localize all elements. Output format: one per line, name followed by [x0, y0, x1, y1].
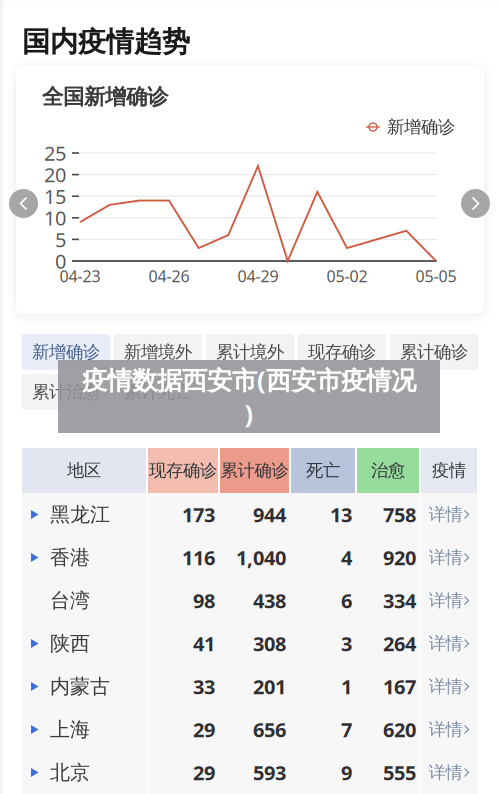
staticText: 1,040: [236, 544, 286, 571]
staticText: 15: [44, 183, 66, 209]
button[interactable]: 详情: [421, 579, 477, 622]
staticText: 香港: [50, 545, 90, 570]
staticText: 黑龙江: [50, 502, 110, 527]
staticText: 累计确诊: [400, 341, 468, 363]
button[interactable]: 详情: [421, 493, 477, 536]
staticText: 20: [44, 161, 66, 188]
staticText: 台湾: [50, 588, 90, 613]
staticText: 疫情数据西安市(西安市疫情况: [82, 363, 416, 396]
staticText: 555: [383, 759, 416, 786]
button[interactable]: 累计境外: [205, 334, 294, 370]
staticText: 新增确诊: [387, 116, 455, 138]
staticText: 167: [383, 673, 416, 700]
staticText: 920: [383, 544, 416, 571]
button[interactable]: 新增确诊: [21, 334, 110, 370]
staticText: 116: [182, 544, 215, 571]
staticText: 详情: [428, 762, 462, 783]
staticText: 33: [193, 673, 215, 700]
staticText: 13: [330, 501, 352, 528]
staticText: 758: [383, 501, 416, 528]
staticText: 04-23: [59, 265, 100, 287]
staticText: 1: [341, 673, 352, 700]
button[interactable]: 累计死亡: [113, 374, 202, 410]
staticText: 9: [341, 759, 352, 786]
staticText: 详情: [428, 633, 462, 654]
button[interactable]: 详情: [421, 665, 477, 708]
staticText: 438: [253, 587, 286, 614]
staticText: 5: [55, 226, 66, 253]
staticText: 656: [253, 716, 286, 743]
staticText: 98: [193, 587, 215, 614]
staticText: 上海: [50, 717, 90, 742]
staticText: 内蒙古: [50, 674, 110, 699]
staticText: 治愈: [371, 460, 405, 481]
button[interactable]: 详情: [421, 536, 477, 579]
staticText: ): [244, 396, 253, 430]
staticText: 地区: [67, 460, 101, 481]
button[interactable]: Next: [461, 189, 490, 218]
staticText: 陕西: [50, 631, 90, 656]
staticText: 详情: [428, 504, 462, 525]
button[interactable]: 累计治愈: [21, 374, 110, 410]
staticText: 累计确诊: [220, 460, 288, 481]
staticText: 死亡: [306, 460, 340, 481]
staticText: 现存确诊: [149, 460, 217, 481]
staticText: 3: [341, 630, 352, 657]
button[interactable]: 详情: [421, 751, 477, 794]
staticText: 北京: [50, 760, 90, 785]
staticText: 29: [193, 759, 215, 786]
staticText: 593: [253, 759, 286, 786]
staticText: 详情: [428, 719, 462, 740]
staticText: 25: [44, 140, 66, 166]
staticText: 详情: [428, 547, 462, 568]
staticText: 04-26: [148, 265, 189, 287]
staticText: 全国新增确诊: [42, 84, 168, 110]
staticText: 10: [44, 204, 66, 231]
button[interactable]: 新增境外: [113, 334, 202, 370]
staticText: 04-29: [237, 265, 278, 287]
staticText: 201: [253, 673, 286, 700]
button[interactable]: 详情: [421, 622, 477, 665]
staticText: 41: [193, 630, 215, 657]
staticText: 累计治愈: [32, 381, 100, 403]
button[interactable]: 累计确诊: [389, 334, 478, 370]
staticText: 现存确诊: [308, 341, 376, 363]
button[interactable]: 详情: [421, 708, 477, 751]
staticText: 新增确诊: [32, 341, 100, 363]
button[interactable]: 现存确诊: [297, 334, 386, 370]
staticText: 05-02: [326, 265, 367, 287]
staticText: 7: [341, 716, 352, 743]
staticText: 新增境外: [124, 341, 192, 363]
staticText: 05-05: [415, 265, 456, 287]
staticText: 308: [253, 630, 286, 657]
button[interactable]: Previous: [9, 189, 38, 218]
staticText: 173: [182, 501, 215, 528]
staticText: 6: [341, 587, 352, 614]
staticText: 累计境外: [216, 341, 284, 363]
staticText: 29: [193, 716, 215, 743]
staticText: 334: [383, 587, 416, 614]
staticText: 620: [383, 716, 416, 743]
staticText: 0: [55, 248, 66, 274]
staticText: 详情: [428, 676, 462, 697]
staticText: 国内疫情趋势: [22, 25, 190, 59]
staticText: 详情: [428, 590, 462, 611]
staticText: 4: [341, 544, 352, 571]
staticText: 疫情: [432, 460, 466, 481]
staticText: 累计死亡: [124, 381, 192, 403]
staticText: 264: [383, 630, 416, 657]
staticText: 944: [253, 501, 286, 528]
